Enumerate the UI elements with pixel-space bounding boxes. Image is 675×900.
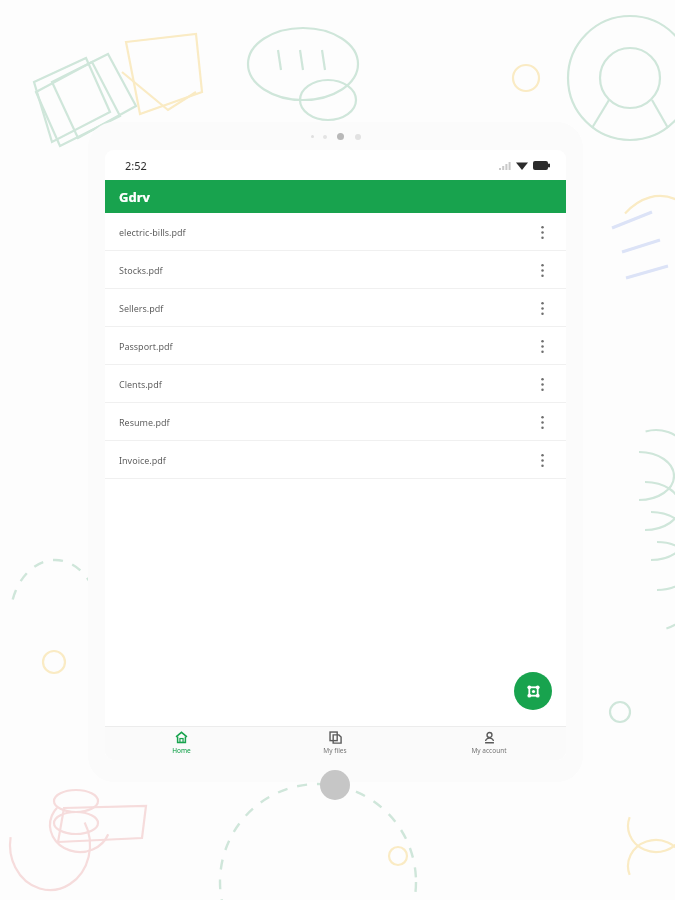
staticText: Sellers.pdf bbox=[119, 302, 532, 314]
button[interactable]: Stocks.pdf bbox=[105, 251, 566, 288]
staticText: Home bbox=[172, 746, 191, 755]
button[interactable]: More options for Sellers.pdf bbox=[532, 294, 552, 322]
button[interactable]: My account bbox=[412, 726, 566, 760]
button[interactable]: Add file bbox=[514, 672, 552, 710]
button[interactable]: Resume.pdf bbox=[105, 403, 566, 440]
button[interactable]: More options for electric-bills.pdf bbox=[532, 218, 552, 246]
staticText: electric-bills.pdf bbox=[119, 226, 532, 238]
button[interactable]: Passport.pdf bbox=[105, 327, 566, 364]
button[interactable]: More options for Stocks.pdf bbox=[532, 256, 552, 284]
staticText: Resume.pdf bbox=[119, 416, 532, 428]
staticText: 2:52 bbox=[125, 158, 147, 173]
button[interactable]: More options for Resume.pdf bbox=[532, 408, 552, 436]
button[interactable]: Sellers.pdf bbox=[105, 289, 566, 326]
staticText: My files bbox=[323, 746, 347, 755]
button[interactable]: More options for Invoice.pdf bbox=[532, 446, 552, 474]
button[interactable]: Clents.pdf bbox=[105, 365, 566, 402]
button[interactable]: Invoice.pdf bbox=[105, 441, 566, 478]
button[interactable]: My files bbox=[258, 726, 412, 760]
staticText: Gdrv bbox=[119, 188, 150, 206]
button[interactable]: electric-bills.pdf bbox=[105, 213, 566, 250]
staticText: Clents.pdf bbox=[119, 378, 532, 390]
staticText: Stocks.pdf bbox=[119, 264, 532, 276]
button[interactable]: Home bbox=[105, 726, 258, 760]
button[interactable]: More options for Clents.pdf bbox=[532, 370, 552, 398]
staticText: Passport.pdf bbox=[119, 340, 532, 352]
staticText: My account bbox=[471, 746, 507, 755]
staticText: Invoice.pdf bbox=[119, 454, 532, 466]
button[interactable]: More options for Passport.pdf bbox=[532, 332, 552, 360]
